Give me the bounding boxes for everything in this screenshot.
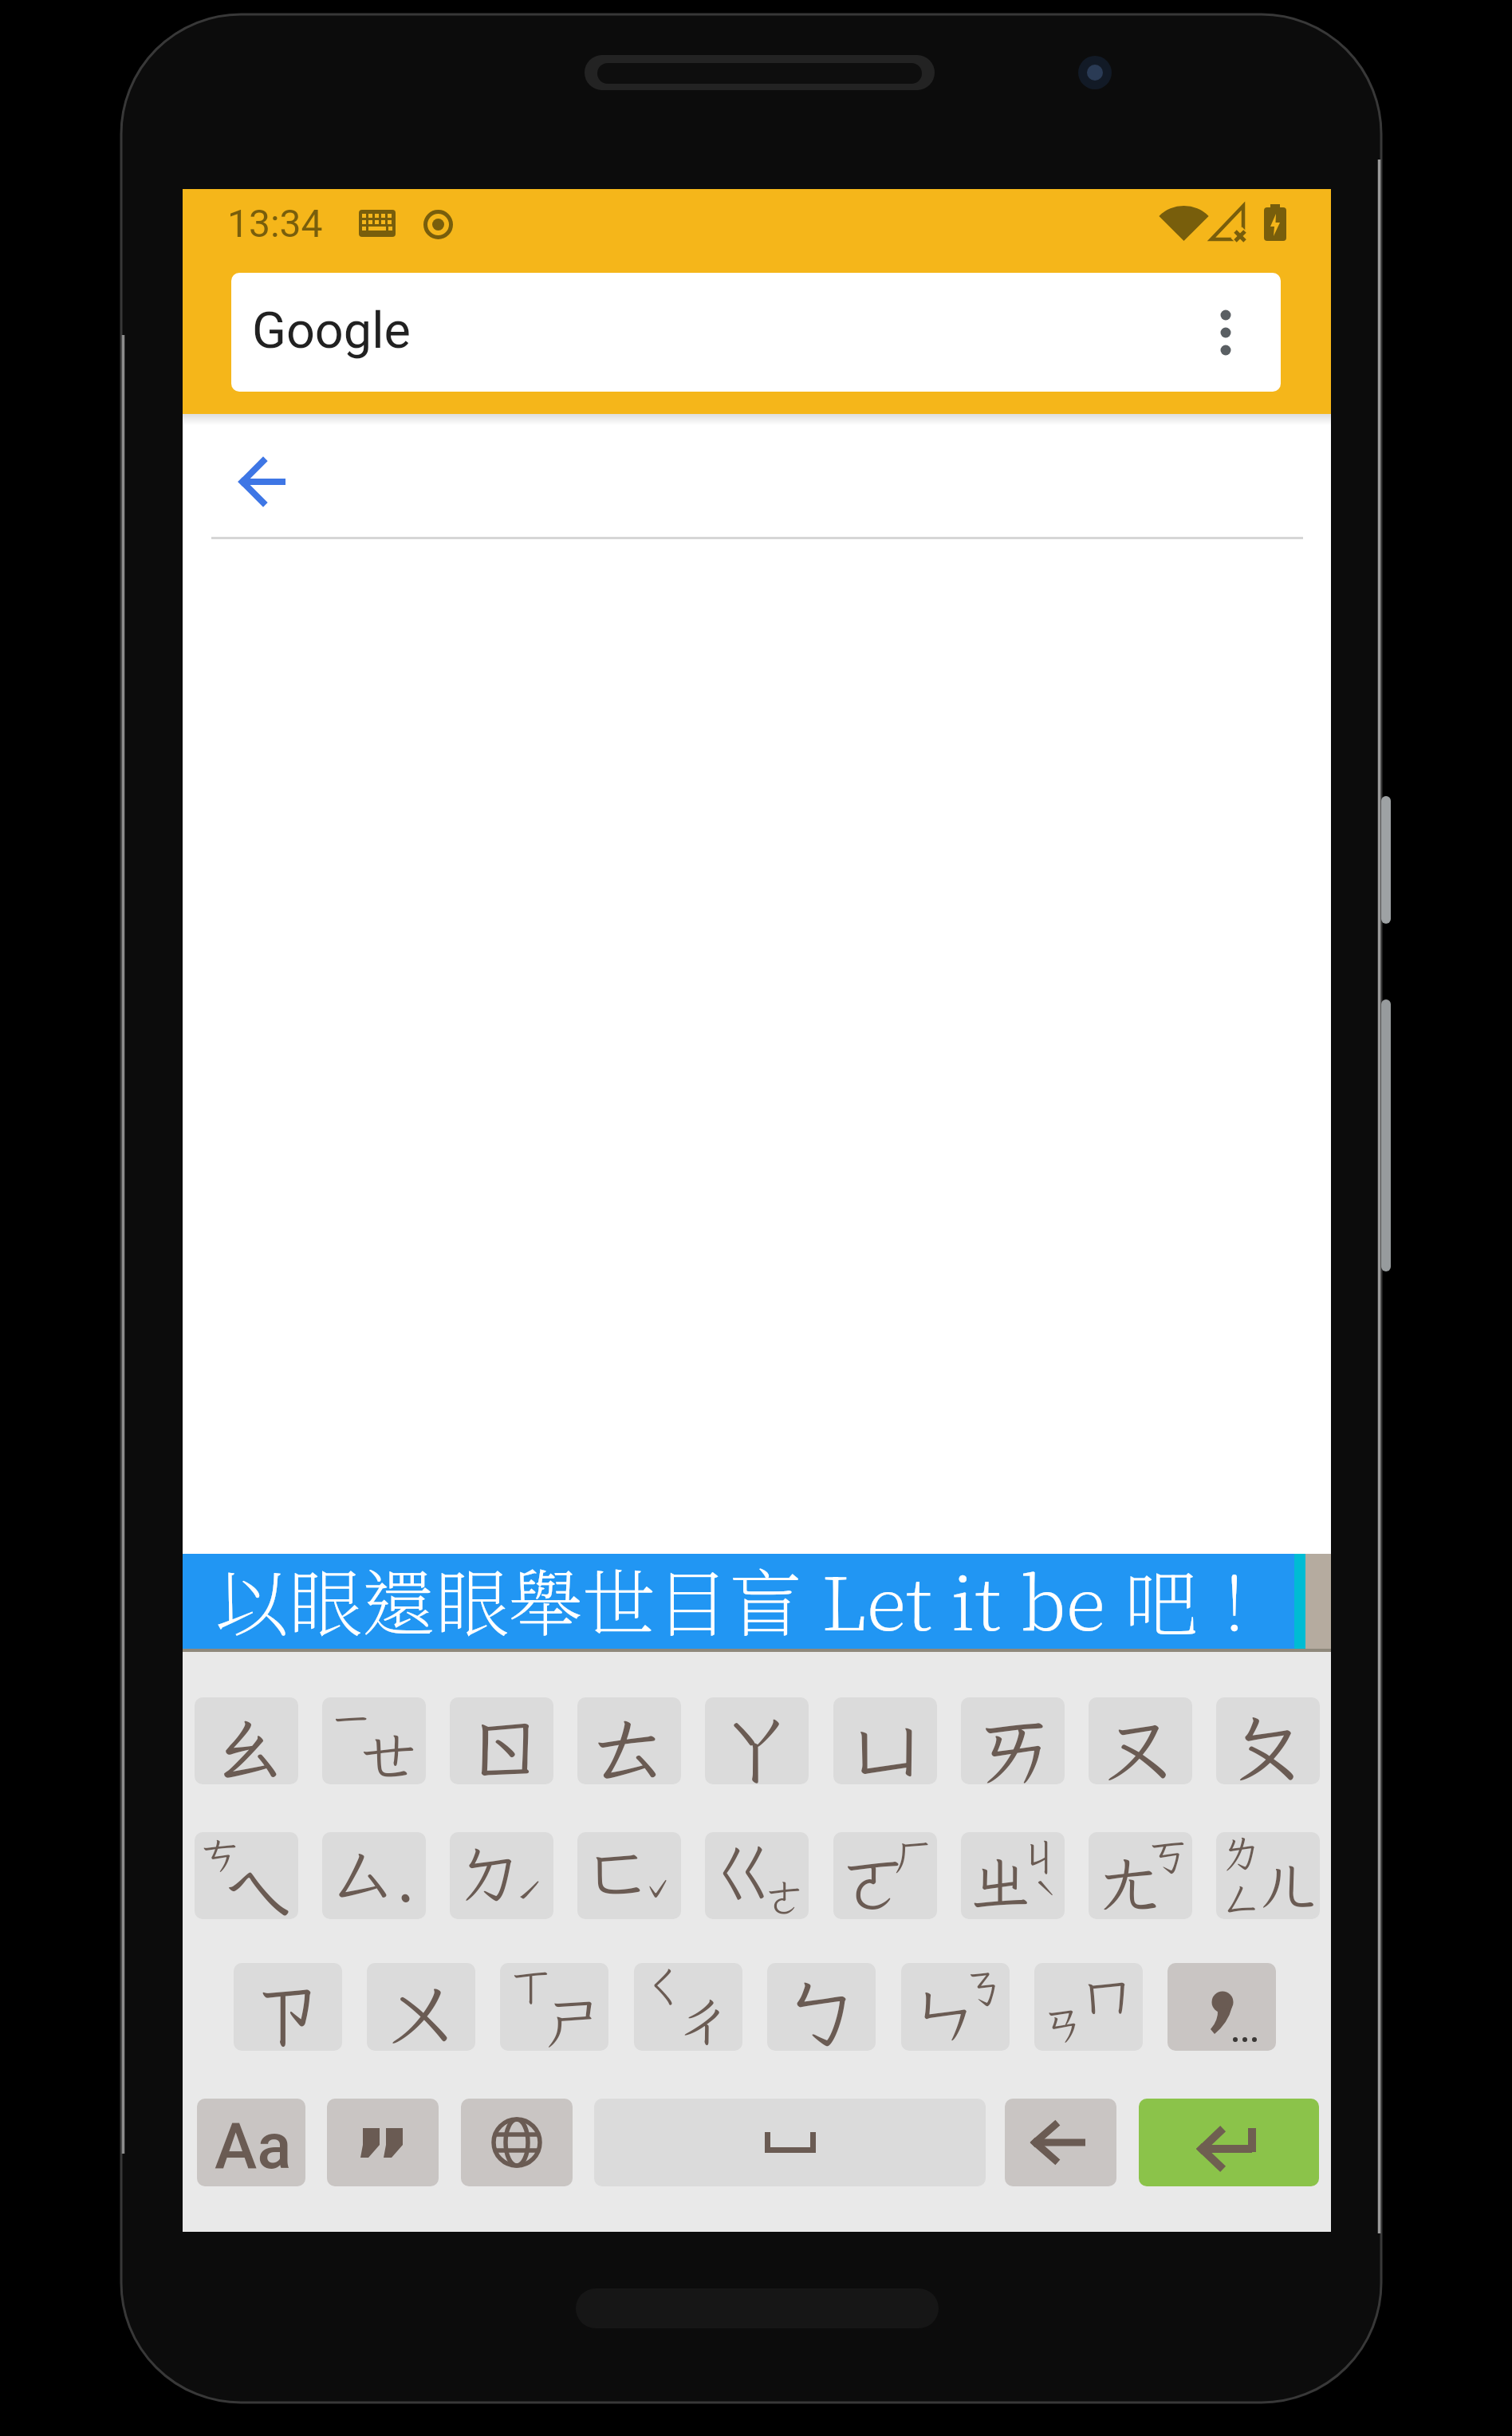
button[interactable] bbox=[594, 2099, 986, 2186]
staticText: ㄟ bbox=[221, 1843, 295, 1919]
button[interactable]: ㄞ bbox=[961, 1697, 1065, 1784]
staticText: ㄘ bbox=[199, 1832, 239, 1880]
button[interactable]: ㄈ bbox=[577, 1832, 681, 1919]
staticText: ㄛ bbox=[841, 1840, 904, 1919]
button[interactable]: ㄗ bbox=[234, 1963, 342, 2051]
staticText: ㄌ bbox=[1223, 1832, 1262, 1878]
staticText: ㄊ bbox=[590, 1697, 669, 1784]
staticText: ㄝ bbox=[360, 1719, 416, 1784]
button[interactable]: ㄉ bbox=[450, 1832, 553, 1919]
button[interactable]: ㄖ bbox=[450, 1697, 553, 1784]
button[interactable]: ㄨ bbox=[367, 1963, 475, 2051]
staticText: ˙ bbox=[395, 1872, 416, 1919]
button[interactable]: ㄢ bbox=[1034, 1963, 1143, 2051]
staticText: ㄩ bbox=[846, 1697, 925, 1784]
staticText: ㄖ bbox=[463, 1697, 541, 1784]
button[interactable]: ㄒ bbox=[500, 1963, 608, 2051]
button[interactable] bbox=[1005, 2099, 1116, 2186]
staticText: ㄐ bbox=[1020, 1832, 1060, 1882]
button[interactable]: ㄙ bbox=[322, 1832, 426, 1919]
staticText: ㄢ bbox=[1042, 1996, 1085, 2051]
staticText: ˇ bbox=[645, 1872, 671, 1919]
staticText: ㄣ bbox=[913, 1973, 976, 2051]
button[interactable]: ㄍ bbox=[705, 1832, 809, 1919]
button[interactable]: ㄡ bbox=[1089, 1697, 1192, 1784]
staticText: ㄚ bbox=[718, 1697, 797, 1784]
button[interactable] bbox=[242, 459, 287, 504]
staticText: ㄍ bbox=[712, 1832, 776, 1911]
button[interactable]: ㄆ bbox=[1216, 1697, 1320, 1784]
staticText: ㄉ bbox=[459, 1832, 522, 1914]
button[interactable]: ㄘ bbox=[195, 1832, 298, 1919]
button[interactable]: ㄤ bbox=[1089, 1832, 1192, 1919]
button[interactable]: ㄌ bbox=[1216, 1832, 1320, 1919]
button[interactable]: ㄑ bbox=[634, 1963, 742, 2051]
staticText: ㄇ bbox=[1081, 1963, 1133, 2032]
staticText: 以眼還眼舉世目盲 Let it be 吧！ bbox=[215, 1546, 1271, 1641]
staticText: ˊ bbox=[518, 1872, 544, 1919]
staticText: Google bbox=[252, 302, 411, 361]
button[interactable]: Google bbox=[231, 273, 1281, 392]
staticText: ㄤ bbox=[1096, 1840, 1160, 1919]
button[interactable]: ㄅ bbox=[767, 1963, 876, 2051]
staticText: ㄦ bbox=[1258, 1845, 1317, 1919]
button[interactable]: ㄊ bbox=[577, 1697, 681, 1784]
staticText: ㄡ bbox=[1101, 1697, 1180, 1784]
staticText: ㄅ bbox=[783, 1963, 860, 2051]
staticText: ㄈ bbox=[586, 1832, 650, 1914]
button[interactable]: ㄓ bbox=[961, 1832, 1065, 1919]
staticText: ㄜ bbox=[765, 1872, 804, 1919]
staticText: ㄒ bbox=[510, 1963, 552, 2012]
staticText: ㄆ bbox=[1229, 1697, 1308, 1784]
button[interactable] bbox=[1220, 309, 1231, 357]
staticText: ㄓ bbox=[968, 1839, 1032, 1919]
staticText: ㄧ bbox=[330, 1697, 372, 1745]
button[interactable] bbox=[327, 2099, 439, 2186]
staticText: ㄠ bbox=[207, 1697, 286, 1784]
button[interactable]: Aa bbox=[197, 2099, 305, 2186]
button[interactable]: ㄛ bbox=[833, 1832, 937, 1919]
button[interactable] bbox=[461, 2099, 573, 2186]
staticText: ㄋ bbox=[963, 1963, 1005, 2014]
staticText: Aa bbox=[215, 2109, 292, 2184]
staticText: ㄥ bbox=[1223, 1872, 1262, 1919]
staticText: ˋ bbox=[1035, 1874, 1057, 1919]
staticText: ㄞ bbox=[974, 1697, 1053, 1784]
button[interactable]: ㄧ bbox=[322, 1697, 426, 1784]
button[interactable]: ㄚ bbox=[705, 1697, 809, 1784]
button[interactable]: ㄣ bbox=[901, 1963, 1010, 2051]
button[interactable] bbox=[1139, 2099, 1319, 2186]
staticText: ㄑ bbox=[644, 1963, 686, 2012]
staticText: ㄔ bbox=[675, 1984, 731, 2051]
button[interactable]: ㄠ bbox=[195, 1697, 298, 1784]
staticText: ㄨ bbox=[383, 1963, 459, 2051]
staticText: ㄎ bbox=[1148, 1832, 1187, 1882]
staticText: 13:34 bbox=[227, 201, 323, 246]
staticText: ㄕ bbox=[541, 1984, 597, 2051]
button[interactable]: ㄩ bbox=[833, 1697, 937, 1784]
button[interactable] bbox=[1167, 1963, 1276, 2051]
staticText: ㄗ bbox=[250, 1963, 326, 2051]
staticText: ㄙ bbox=[331, 1832, 395, 1914]
button[interactable]: 以眼還眼舉世目盲 Let it be 吧！ bbox=[183, 1554, 1294, 1649]
staticText: ㄏ bbox=[892, 1832, 932, 1882]
